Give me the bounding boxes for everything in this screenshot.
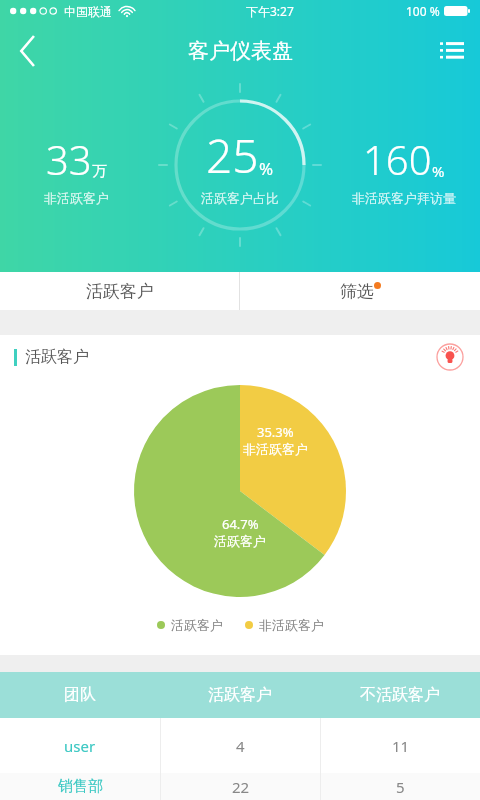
staticText: 11 (392, 736, 410, 756)
button[interactable]: Menu (424, 22, 480, 80)
button[interactable]: 筛选 (240, 272, 480, 310)
button[interactable]: Back (0, 22, 56, 80)
staticText: 活跃客户 (208, 685, 272, 705)
staticText: 非活跃客户 (243, 441, 308, 457)
button[interactable]: 活跃客户 (0, 272, 239, 310)
staticText: 22 (232, 777, 250, 797)
staticText: 销售部 (58, 777, 103, 796)
staticText: 活跃客户 (214, 533, 266, 549)
staticText: 中国联通 (64, 4, 112, 19)
staticText: 25 (206, 124, 259, 187)
staticText: 筛选 (340, 281, 374, 302)
staticText: 客户仪表盘 (188, 38, 293, 64)
staticText: 33 (46, 132, 92, 186)
button[interactable]: Tips (434, 341, 466, 373)
staticText: 4 (236, 736, 245, 756)
staticText: 活跃客户占比 (201, 190, 279, 206)
staticText: 160 (363, 132, 432, 186)
staticText: % (259, 157, 274, 180)
staticText: 万 (92, 162, 107, 181)
button[interactable]: user (0, 718, 480, 773)
staticText: 非活跃客户 (44, 190, 109, 206)
button[interactable]: 销售部 (0, 773, 480, 800)
staticText: 5 (396, 777, 405, 797)
staticText: 100 % (406, 3, 440, 19)
staticText: user (64, 736, 96, 756)
staticText: 团队 (64, 685, 96, 705)
staticText: 活跃客户 (86, 281, 154, 302)
staticText: 非活跃客户 (259, 617, 324, 633)
staticText: 活跃客户 (171, 617, 223, 633)
staticText: 非活跃客户拜访量 (352, 190, 456, 206)
staticText: 64.7% (222, 515, 259, 533)
staticText: 不活跃客户 (360, 685, 440, 705)
staticText: % (432, 161, 445, 181)
staticText: 活跃客户 (25, 347, 89, 367)
staticText: 下午3:27 (246, 3, 294, 19)
staticText: 35.3% (257, 423, 294, 441)
